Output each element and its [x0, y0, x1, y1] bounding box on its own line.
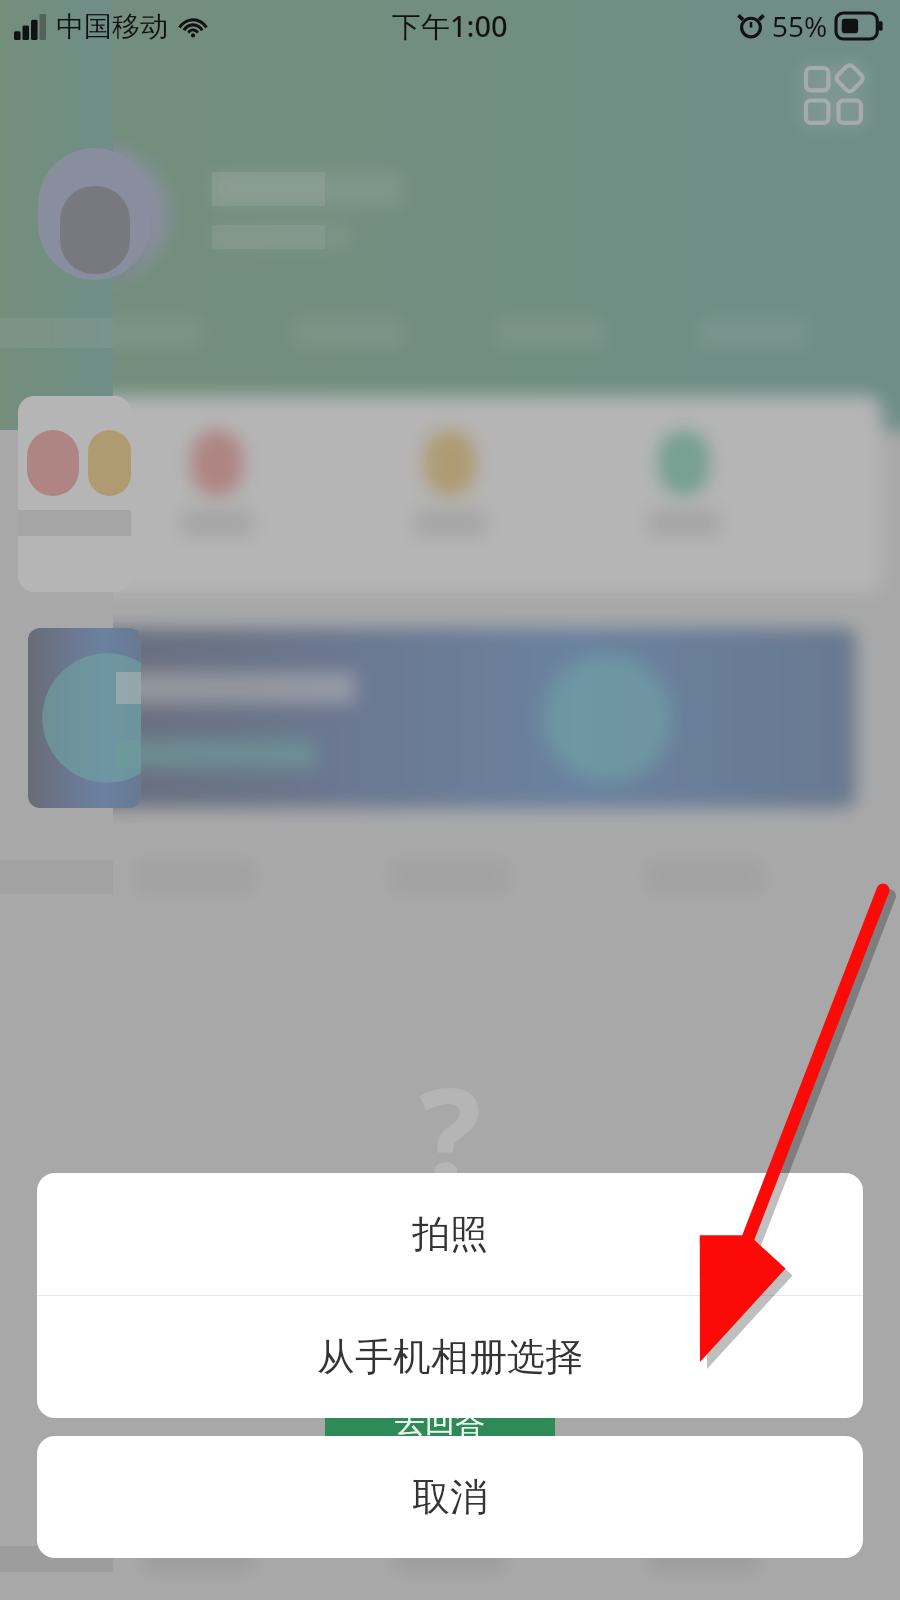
staticText: 下午1:00 [392, 6, 508, 46]
staticText: ? [419, 1043, 482, 1220]
button[interactable]: 拍照 [37, 1173, 863, 1295]
button[interactable]: More apps [806, 68, 862, 124]
button[interactable]: 从手机相册选择 [37, 1296, 863, 1418]
staticText: 中国移动 [56, 9, 168, 44]
button[interactable]: 取消 [37, 1436, 863, 1558]
staticText: 去回答 [395, 1403, 485, 1441]
staticText: 取消 [37, 1473, 863, 1521]
button[interactable]: More apps [806, 68, 862, 124]
staticText: 55% [772, 7, 828, 45]
staticText: 拍照 [37, 1210, 863, 1258]
staticText: 从手机相册选择 [37, 1333, 863, 1381]
button[interactable]: 去回答 [325, 1398, 555, 1446]
